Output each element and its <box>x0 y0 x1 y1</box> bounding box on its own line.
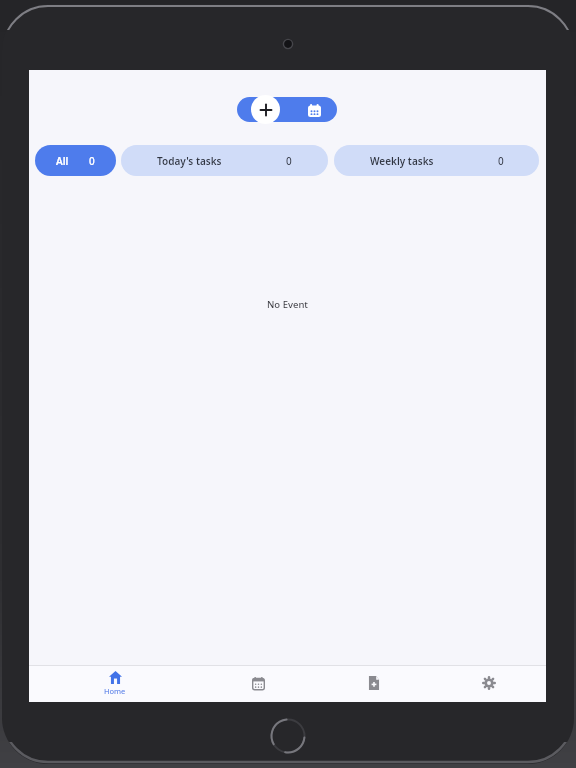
staticText: Home <box>104 686 126 696</box>
staticText: 0 <box>498 154 504 168</box>
button[interactable]: All <box>35 145 116 176</box>
button[interactable]: Weekly tasks <box>334 145 539 176</box>
button[interactable]: Today's tasks <box>121 145 328 176</box>
staticText: 0 <box>89 154 95 168</box>
staticText: 0 <box>286 154 292 168</box>
button[interactable] <box>201 666 316 702</box>
staticText: Today's tasks <box>157 154 222 168</box>
staticText: All <box>56 154 69 168</box>
staticText: No Event <box>267 298 308 311</box>
button[interactable] <box>316 666 431 702</box>
button[interactable] <box>251 95 280 124</box>
button[interactable] <box>431 666 546 702</box>
staticText: Weekly tasks <box>370 154 434 168</box>
button[interactable]: Home <box>29 666 201 702</box>
button[interactable] <box>237 97 337 122</box>
